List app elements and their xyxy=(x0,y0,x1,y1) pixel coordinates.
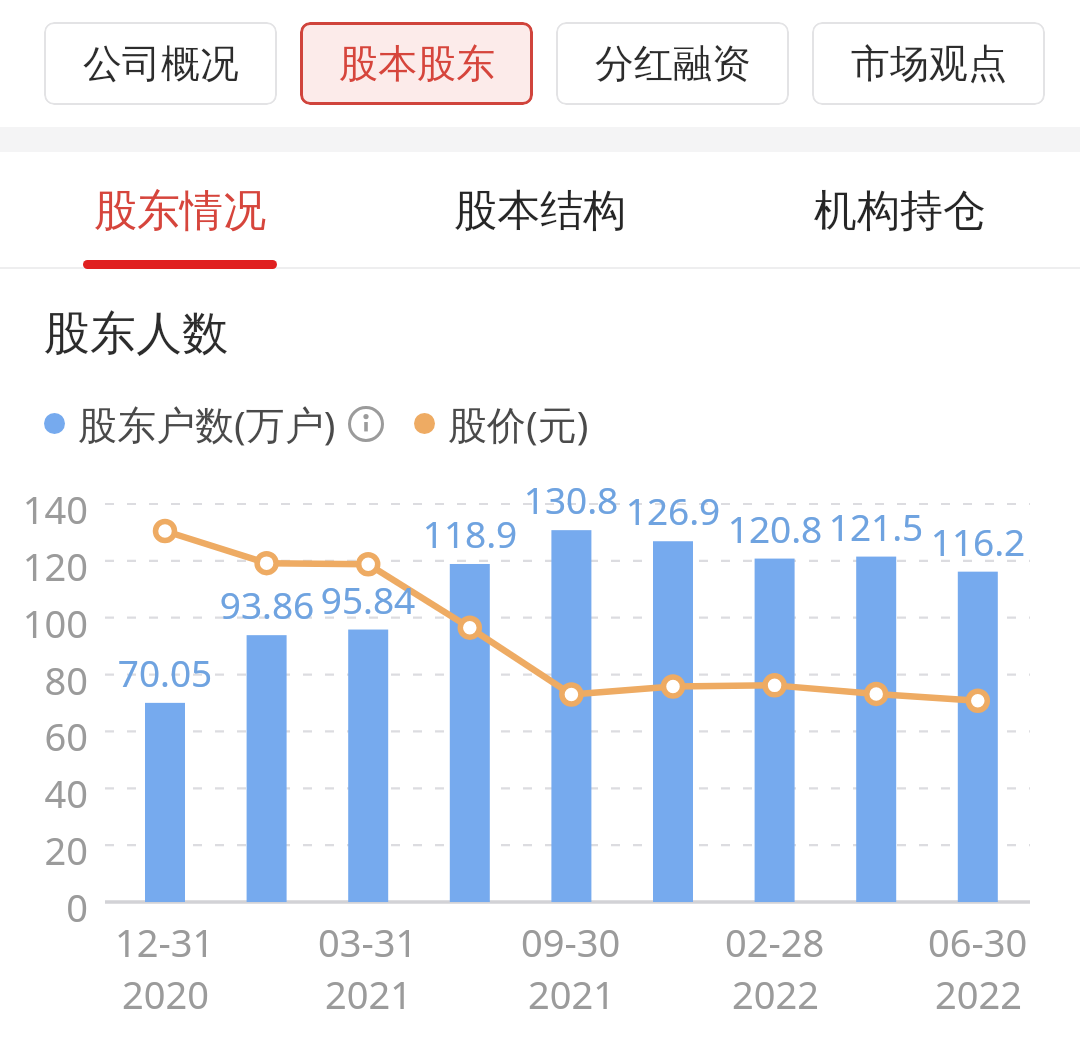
button[interactable]: 分红融资 xyxy=(556,22,789,105)
button[interactable]: 股本股东 xyxy=(300,22,533,105)
staticText: 20 xyxy=(0,824,88,876)
staticText: 12-31 xyxy=(115,916,215,968)
staticText: 股东户数(万户) xyxy=(78,397,336,450)
staticText: 2020 xyxy=(122,968,209,1020)
staticText: 100 xyxy=(0,597,88,649)
staticText: 60 xyxy=(0,710,88,762)
staticText: 09-30 xyxy=(521,916,621,968)
button[interactable]: 股东情况 xyxy=(0,152,360,269)
staticText: 140 xyxy=(0,483,88,535)
staticText: 126.9 xyxy=(603,485,743,535)
button[interactable]: 机构持仓 xyxy=(720,152,1080,269)
button[interactable]: 市场观点 xyxy=(812,22,1045,105)
staticText: 06-30 xyxy=(928,916,1028,968)
staticText: 116.2 xyxy=(908,516,1048,566)
staticText: 70.05 xyxy=(95,647,235,697)
staticText: 03-31 xyxy=(318,916,418,968)
staticText: 市场观点 xyxy=(851,39,1007,88)
staticText: 121.5 xyxy=(806,501,946,551)
staticText: 股本结构 xyxy=(454,184,626,238)
staticText: 公司概况 xyxy=(83,39,239,88)
staticText: 0 xyxy=(0,881,88,933)
button[interactable]: Info xyxy=(346,404,386,444)
staticText: 机构持仓 xyxy=(814,184,986,238)
staticText: 118.9 xyxy=(400,508,540,558)
button[interactable]: 公司概况 xyxy=(44,22,277,105)
staticText: 2021 xyxy=(528,968,615,1020)
staticText: 分红融资 xyxy=(595,39,751,88)
staticText: 40 xyxy=(0,767,88,819)
staticText: 02-28 xyxy=(725,916,825,968)
staticText: 93.86 xyxy=(197,579,337,629)
button[interactable]: 股本结构 xyxy=(360,152,720,269)
staticText: 95.84 xyxy=(298,574,438,624)
staticText: 2022 xyxy=(935,968,1022,1020)
staticText: 120.8 xyxy=(705,503,845,553)
staticText: 股东情况 xyxy=(94,184,266,238)
staticText: 2021 xyxy=(325,968,412,1020)
staticText: 120 xyxy=(0,540,88,592)
staticText: 股价(元) xyxy=(448,397,589,450)
staticText: 130.8 xyxy=(501,474,641,524)
staticText: 80 xyxy=(0,654,88,706)
staticText: 股本股东 xyxy=(339,39,495,88)
staticText: 股东人数 xyxy=(44,305,228,363)
staticText: 2022 xyxy=(732,968,819,1020)
